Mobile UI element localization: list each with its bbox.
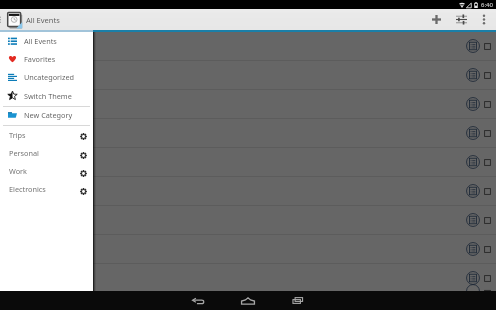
staticText: Trips xyxy=(9,130,26,140)
button[interactable] xyxy=(0,264,496,291)
button[interactable] xyxy=(0,90,496,119)
button[interactable]: Uncategorized xyxy=(0,69,93,87)
button[interactable]: Open navigation drawer xyxy=(0,9,5,30)
button[interactable]: Favorites xyxy=(0,51,93,69)
button[interactable]: Trips xyxy=(0,126,93,145)
staticText: All Events xyxy=(24,36,57,46)
button[interactable]: Back xyxy=(180,291,216,310)
button[interactable]: Recent apps xyxy=(280,291,316,310)
button[interactable]: Personal xyxy=(0,145,93,163)
button[interactable]: Electronics xyxy=(0,181,93,199)
button[interactable]: Work xyxy=(0,163,93,181)
button[interactable] xyxy=(0,119,496,148)
button[interactable] xyxy=(0,235,496,264)
button[interactable] xyxy=(0,177,496,206)
button[interactable]: Filter xyxy=(449,9,474,30)
button[interactable]: Home xyxy=(230,291,266,310)
button[interactable]: More options xyxy=(474,9,494,30)
button[interactable]: New Category xyxy=(0,107,93,125)
staticText: 6:40 xyxy=(481,1,493,9)
button[interactable]: Switch Theme xyxy=(0,87,93,106)
staticText: Favorites xyxy=(24,54,56,64)
button[interactable] xyxy=(0,32,496,61)
staticText: Personal xyxy=(9,148,39,158)
staticText: Uncategorized xyxy=(24,72,75,82)
button[interactable]: All Events xyxy=(0,32,93,51)
button[interactable] xyxy=(0,148,496,177)
button[interactable]: Add xyxy=(424,9,449,30)
staticText: All Events xyxy=(26,15,60,25)
staticText: Electronics xyxy=(9,184,46,194)
button[interactable] xyxy=(0,206,496,235)
staticText: Switch Theme xyxy=(24,91,72,101)
staticText: Work xyxy=(9,166,27,176)
button[interactable] xyxy=(0,61,496,90)
staticText: New Category xyxy=(24,110,73,120)
